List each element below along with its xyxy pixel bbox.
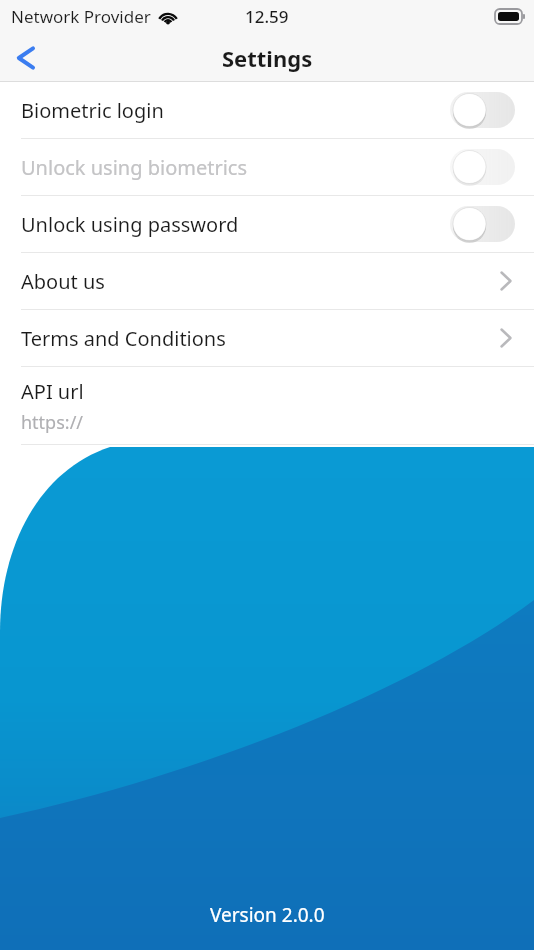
staticText: API url bbox=[21, 378, 84, 405]
staticText: 12.59 bbox=[245, 5, 289, 28]
button[interactable]: Toggle bbox=[450, 149, 515, 185]
staticText: Unlock using biometrics bbox=[21, 154, 450, 181]
button[interactable]: About us bbox=[0, 253, 534, 309]
staticText: Settings bbox=[222, 43, 313, 73]
button[interactable]: API url bbox=[0, 367, 534, 444]
staticText: About us bbox=[21, 268, 500, 295]
staticText: Unlock using password bbox=[21, 211, 450, 238]
button[interactable]: Terms and Conditions bbox=[0, 310, 534, 366]
button[interactable]: Unlock using biometrics bbox=[0, 139, 534, 195]
staticText: https:// bbox=[21, 410, 84, 435]
button[interactable]: Toggle bbox=[450, 92, 515, 128]
button[interactable]: Back bbox=[0, 33, 50, 82]
staticText: Network Provider bbox=[11, 5, 151, 28]
button[interactable]: Biometric login bbox=[0, 82, 534, 138]
staticText: Biometric login bbox=[21, 97, 450, 124]
button[interactable]: Toggle bbox=[450, 206, 515, 242]
staticText: Terms and Conditions bbox=[21, 325, 500, 352]
button[interactable]: Unlock using password bbox=[0, 196, 534, 252]
staticText: Version 2.0.0 bbox=[210, 902, 325, 928]
